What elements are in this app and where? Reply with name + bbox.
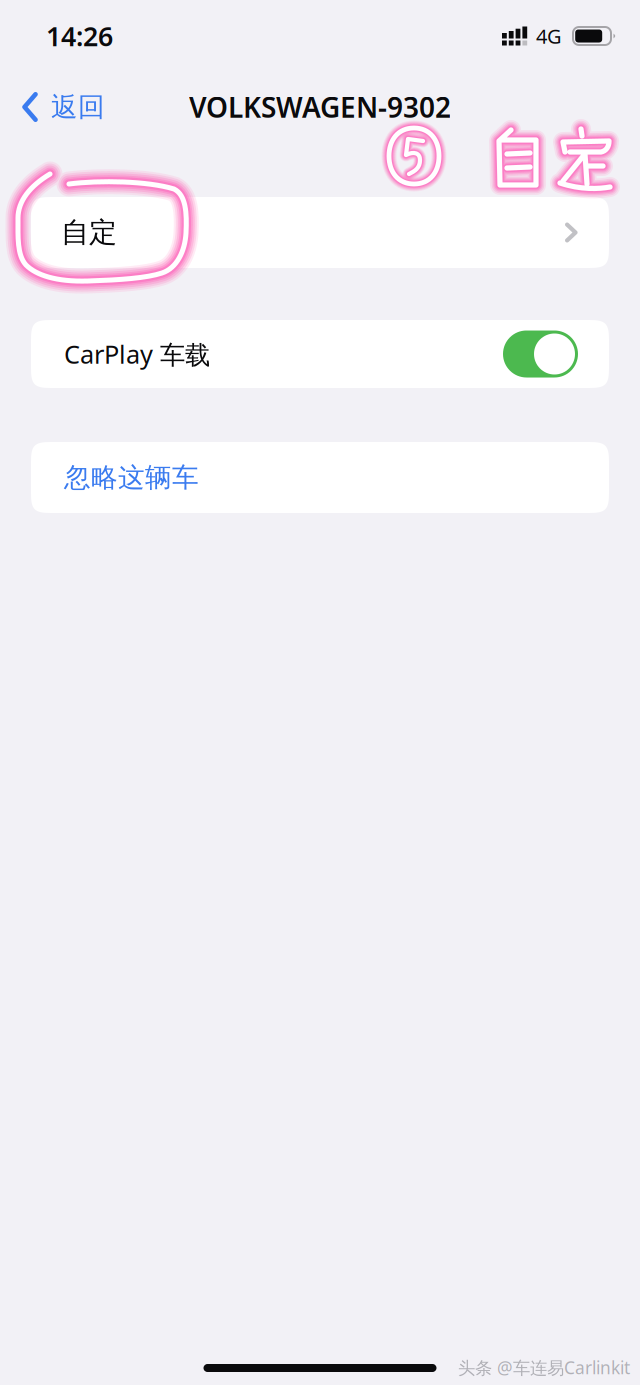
staticText: 头条 @车连易Carlinkit <box>458 1356 630 1379</box>
button[interactable]: CarPlay 车载 <box>503 330 578 377</box>
staticText: 14:26 <box>46 18 113 54</box>
staticText: VOLKSWAGEN-9302 <box>189 88 451 126</box>
staticText: 返回 <box>51 91 105 123</box>
staticText: 4G <box>536 23 562 49</box>
button[interactable]: 忽略这辆车 <box>0 442 640 513</box>
button[interactable]: 返回 <box>0 82 119 132</box>
button[interactable]: 自定 <box>0 197 640 268</box>
staticText: 忽略这辆车 <box>64 461 199 494</box>
staticText: CarPlay 车载 <box>64 337 210 371</box>
staticText: 自定 <box>61 215 117 250</box>
